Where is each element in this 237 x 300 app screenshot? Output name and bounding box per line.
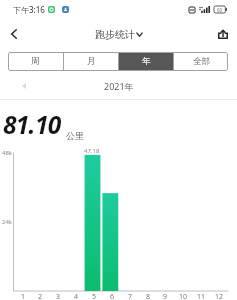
staticText: 8: [146, 292, 151, 300]
staticText: 月: [87, 56, 96, 67]
staticText: 12: [215, 292, 224, 300]
staticText: 6: [110, 292, 115, 300]
button[interactable]: Previous year: [16, 78, 32, 94]
staticText: 7: [128, 292, 133, 300]
staticText: 11: [197, 292, 206, 300]
button[interactable]: 月: [64, 52, 118, 71]
button[interactable]: 全部: [174, 52, 228, 71]
staticText: 年: [142, 56, 151, 67]
staticText: 24k: [2, 218, 13, 226]
staticText: 9: [163, 292, 168, 300]
staticText: 公里: [66, 130, 84, 141]
staticText: 60: [217, 7, 223, 13]
button[interactable]: 年: [119, 52, 173, 71]
staticText: 48k: [2, 149, 13, 157]
button[interactable]: 跑步统计: [93, 28, 145, 41]
staticText: 3: [56, 292, 61, 300]
staticText: 跑步统计: [95, 28, 135, 41]
staticText: 2: [38, 292, 43, 300]
staticText: 10: [179, 292, 188, 300]
staticText: 4: [74, 292, 79, 300]
staticText: 周: [31, 56, 40, 67]
button[interactable]: Back: [3, 23, 25, 45]
button[interactable]: Share: [212, 23, 234, 45]
staticText: 5: [92, 292, 97, 300]
staticText: 2021年: [104, 80, 134, 92]
staticText: 下午3:16: [13, 4, 45, 15]
staticText: 全部: [193, 56, 210, 67]
button[interactable]: 周: [8, 52, 63, 71]
staticText: 1: [21, 292, 26, 300]
staticText: 81.10: [3, 108, 61, 141]
staticText: 47.18: [84, 147, 100, 155]
